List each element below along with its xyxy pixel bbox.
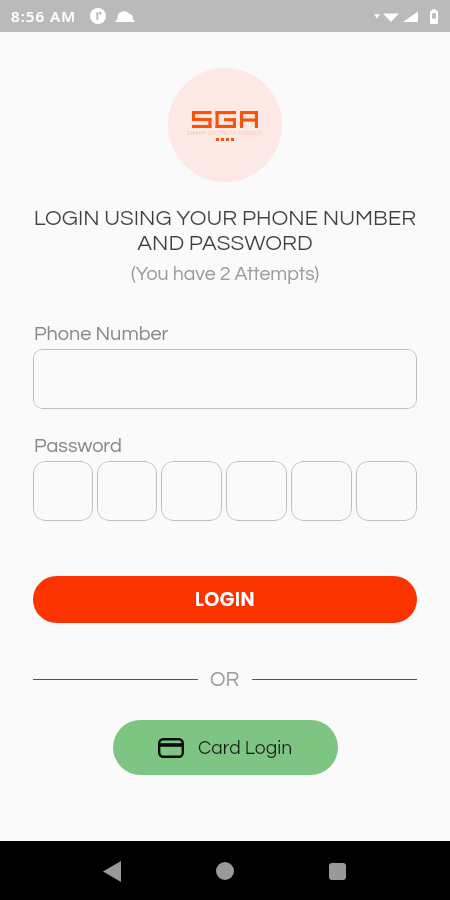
staticText: SHARP SECURITY AGENCY [187, 131, 263, 136]
staticText: Card Login [198, 738, 293, 758]
staticText: Phone Number [34, 324, 169, 344]
button[interactable]: Recent apps [313, 847, 361, 895]
button[interactable] [161, 461, 222, 521]
staticText: LOGIN USING YOUR PHONE NUMBER AND PASSWO… [24, 207, 426, 255]
staticText: Password [34, 436, 122, 456]
staticText: (You have 2 Attempts) [0, 264, 450, 284]
button[interactable]: Card Login [113, 720, 338, 775]
button[interactable] [33, 349, 417, 409]
button[interactable] [226, 461, 287, 521]
button[interactable]: Back [88, 847, 136, 895]
button[interactable] [33, 461, 93, 521]
button[interactable] [291, 461, 352, 521]
button[interactable] [356, 461, 417, 521]
staticText: LOGIN [195, 586, 255, 613]
button[interactable]: Home [201, 847, 249, 895]
button[interactable] [97, 461, 157, 521]
button[interactable]: LOGIN [33, 576, 417, 623]
staticText: OR [210, 669, 240, 690]
staticText: 8:56 AM [11, 6, 77, 26]
